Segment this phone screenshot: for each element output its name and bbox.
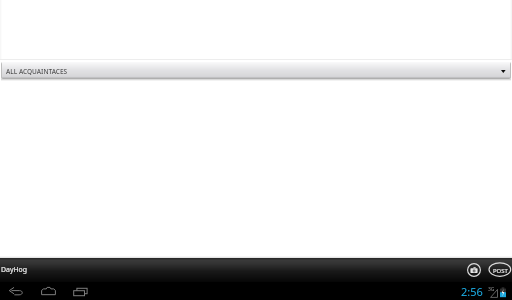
- button[interactable]: ALL ACQUAINTACES: [1, 62, 511, 79]
- button[interactable]: POST: [487, 261, 512, 278]
- button[interactable]: Home: [34, 282, 62, 300]
- staticText: POST: [493, 267, 508, 275]
- button[interactable]: Recent apps: [67, 282, 95, 300]
- button[interactable]: Take photo: [464, 260, 483, 279]
- staticText: DayHog: [1, 265, 27, 274]
- staticText: 2:56: [461, 284, 483, 299]
- button[interactable]: Back: [2, 282, 30, 300]
- staticText: ALL ACQUAINTACES: [6, 67, 68, 76]
- staticText: 3G: [488, 286, 495, 293]
